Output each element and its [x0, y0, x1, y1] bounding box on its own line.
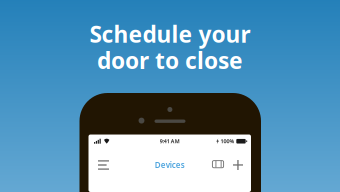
- staticText: door to close: [97, 45, 243, 75]
- staticText: 9:41 AM: [160, 138, 180, 145]
- staticText: 100%: [220, 138, 234, 145]
- staticText: Devices: [155, 160, 185, 170]
- button[interactable]: Menu: [92, 154, 114, 176]
- button[interactable]: Rooms: [207, 154, 229, 176]
- staticText: Schedule your: [89, 19, 250, 49]
- button[interactable]: Add device: [229, 154, 247, 176]
